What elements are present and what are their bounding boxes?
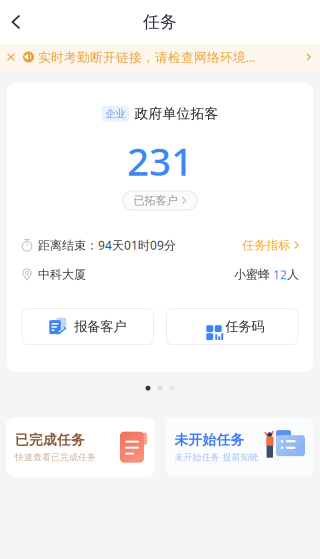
staticText: 企业: [105, 107, 125, 120]
staticText: 快速查看已完成任务: [15, 452, 96, 463]
staticText: 任务指标: [242, 238, 290, 253]
button[interactable]: 已完成任务: [6, 418, 154, 477]
button[interactable]: 已拓客户: [123, 191, 197, 210]
staticText: 人: [287, 267, 299, 282]
staticText: 任务码: [225, 318, 264, 335]
staticText: 报备客户: [74, 318, 126, 335]
staticText: 政府单位拓客: [134, 105, 218, 122]
button[interactable]: 实时考勤断开链接，请检查网络环境...: [0, 44, 320, 70]
staticText: 231: [127, 134, 193, 187]
staticText: 已拓客户: [134, 193, 178, 207]
staticText: 小蜜蜂: [234, 267, 270, 282]
button[interactable]: 报备客户: [22, 309, 153, 345]
button[interactable]: 任务指标: [242, 238, 299, 253]
staticText: 未开始任务: [174, 431, 244, 449]
staticText: 任务: [143, 11, 177, 32]
staticText: 未开始任务 提前知晓: [174, 452, 258, 463]
staticText: 实时考勤断开链接，请检查网络环境...: [38, 48, 255, 66]
button[interactable]: Back: [0, 0, 32, 44]
button[interactable]: 任务码: [166, 309, 298, 345]
staticText: 距离结束：94天01时09分: [38, 237, 176, 253]
button[interactable]: 未开始任务: [165, 418, 314, 477]
staticText: 已完成任务: [15, 431, 85, 449]
staticText: 12: [270, 266, 287, 283]
staticText: 中科大厦: [38, 267, 86, 282]
